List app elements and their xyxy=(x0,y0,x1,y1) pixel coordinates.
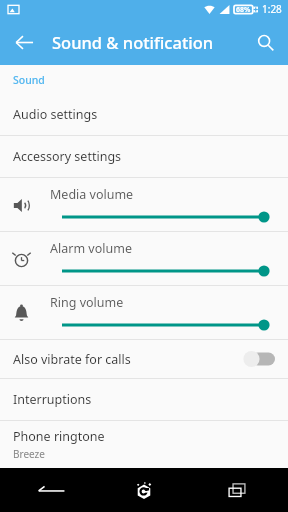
staticText: Ring volume xyxy=(50,294,124,311)
button[interactable]: Alarm volume xyxy=(0,232,288,285)
button[interactable]: Search xyxy=(247,24,283,60)
button[interactable]: Audio settings xyxy=(0,94,288,135)
staticText: Phone ringtone xyxy=(13,428,105,445)
staticText: Accessory settings xyxy=(13,148,122,165)
button[interactable]: Back xyxy=(6,24,42,60)
staticText: Media volume xyxy=(50,186,134,203)
staticText: Also vibrate for calls xyxy=(13,351,131,368)
staticText: Audio settings xyxy=(13,106,98,123)
button[interactable]: Back xyxy=(34,473,68,507)
button[interactable]: Interruptions xyxy=(0,379,288,420)
staticText: Breeze xyxy=(13,447,45,461)
button[interactable]: Also vibrate for calls xyxy=(0,340,288,378)
staticText: Alarm volume xyxy=(50,240,132,257)
button[interactable]: Recent apps xyxy=(220,473,254,507)
staticText: 68% xyxy=(236,5,251,15)
staticText: Sound & notification xyxy=(52,31,214,53)
staticText: Sound xyxy=(13,73,45,87)
button[interactable]: Ring volume xyxy=(0,286,288,339)
staticText: Interruptions xyxy=(13,391,92,408)
button[interactable]: Accessory settings xyxy=(0,136,288,177)
staticText: 1:28 xyxy=(262,2,282,16)
button[interactable]: Phone ringtone xyxy=(0,421,288,468)
button[interactable]: Home xyxy=(127,473,161,507)
button[interactable]: Media volume xyxy=(0,178,288,231)
